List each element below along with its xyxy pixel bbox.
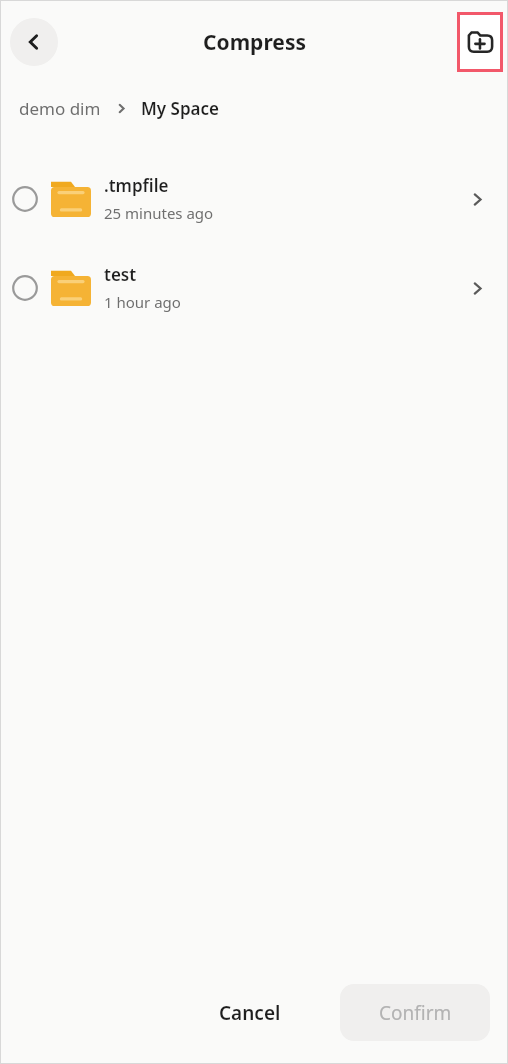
button[interactable]: Cancel: [197, 984, 303, 1041]
button[interactable]: Select .tmpfile: [0, 154, 508, 243]
staticText: Compress: [203, 28, 306, 57]
staticText: 1 hour ago: [104, 292, 181, 312]
staticText: demo dim: [19, 97, 101, 120]
button[interactable]: Back: [10, 18, 58, 66]
staticText: Confirm: [379, 1000, 452, 1026]
button[interactable]: Confirm: [340, 984, 490, 1041]
button[interactable]: Select test: [11, 274, 39, 302]
staticText: 25 minutes ago: [104, 203, 214, 223]
button[interactable]: Select .tmpfile: [11, 185, 39, 213]
staticText: My Space: [141, 97, 219, 120]
button[interactable]: demo dim: [19, 97, 101, 120]
button[interactable]: New folder: [457, 12, 503, 72]
staticText: test: [104, 263, 137, 286]
staticText: .tmpfile: [104, 174, 169, 197]
staticText: Cancel: [219, 1000, 281, 1026]
button[interactable]: Open .tmpfile: [462, 184, 492, 214]
button[interactable]: Select test: [0, 243, 508, 332]
button[interactable]: My Space: [141, 97, 219, 120]
button[interactable]: Open test: [462, 273, 492, 303]
